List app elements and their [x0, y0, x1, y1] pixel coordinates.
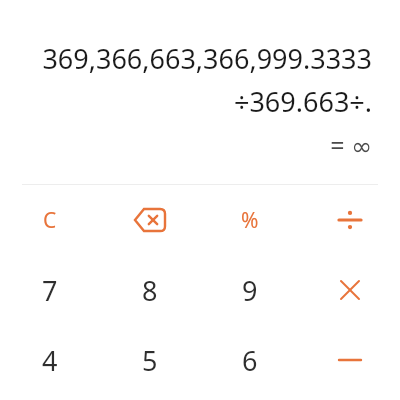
- button[interactable]: 6: [200, 325, 300, 395]
- button[interactable]: C: [0, 185, 100, 255]
- staticText: 6: [242, 342, 258, 379]
- staticText: 4: [42, 342, 58, 379]
- staticText: %: [241, 206, 259, 235]
- staticText: 9: [242, 272, 258, 309]
- staticText: = ∞: [22, 128, 372, 162]
- staticText: ÷369.663÷.: [22, 83, 372, 120]
- staticText: 5: [142, 342, 158, 379]
- staticText: 8: [142, 272, 158, 309]
- staticText: C: [43, 206, 57, 235]
- button[interactable]: 5: [100, 325, 200, 395]
- button[interactable]: 7: [0, 255, 100, 325]
- button[interactable]: Divide: [300, 185, 400, 255]
- staticText: 7: [42, 272, 58, 309]
- button[interactable]: %: [200, 185, 300, 255]
- button[interactable]: Minus: [300, 325, 400, 395]
- button[interactable]: Multiply: [300, 255, 400, 325]
- button[interactable]: 4: [0, 325, 100, 395]
- button[interactable]: 9: [200, 255, 300, 325]
- button[interactable]: 8: [100, 255, 200, 325]
- button[interactable]: Backspace: [100, 185, 200, 255]
- staticText: 369,366,663,366,999.3333: [22, 40, 372, 77]
